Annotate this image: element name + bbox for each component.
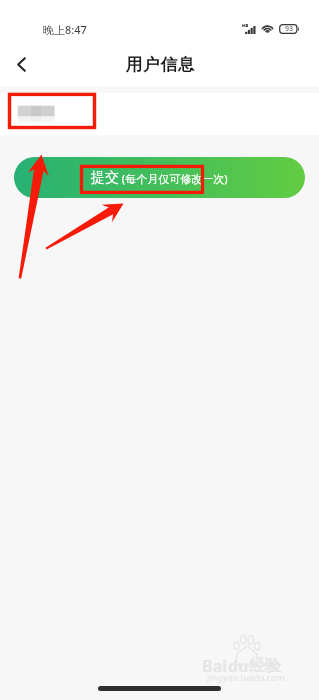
- staticText: 经验: [249, 656, 281, 676]
- staticText: du: [228, 655, 249, 677]
- staticText: 晚上8:47: [43, 22, 87, 37]
- staticText: Bai: [202, 655, 228, 677]
- button[interactable]: [0, 93, 319, 135]
- staticText: (每个月仅可修改一次): [119, 171, 228, 186]
- staticText: 提交: [91, 169, 119, 187]
- staticText: 93: [285, 24, 294, 34]
- button[interactable]: 提交: [14, 157, 305, 198]
- button[interactable]: Back: [1, 44, 41, 84]
- staticText: jingyan.baidu.com: [207, 671, 285, 683]
- staticText: 用户信息: [125, 54, 195, 75]
